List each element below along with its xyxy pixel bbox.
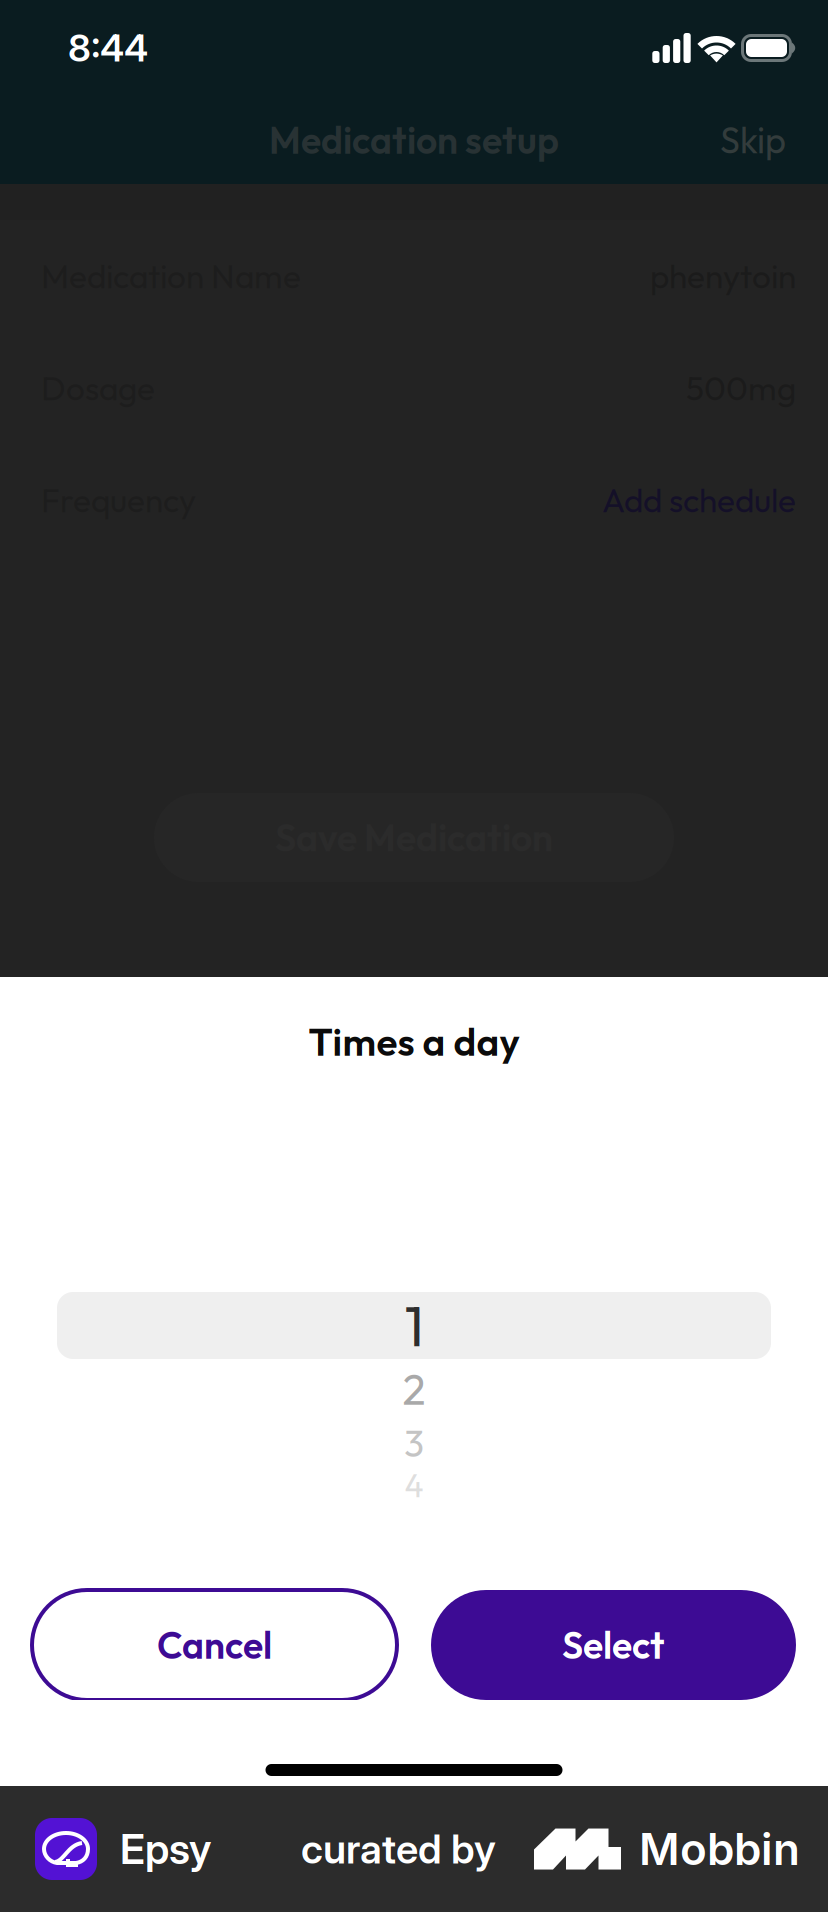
- button[interactable]: Cancel: [32, 1590, 397, 1700]
- staticText: 1: [404, 1290, 423, 1361]
- staticText: 2: [402, 1362, 425, 1416]
- staticText: Times a day: [308, 1017, 519, 1066]
- staticText: Epsy: [120, 1824, 211, 1874]
- staticText: 4: [404, 1465, 423, 1506]
- button[interactable]: Skip: [706, 105, 800, 175]
- staticText: Add schedule: [602, 479, 796, 521]
- staticText: Select: [562, 1621, 665, 1668]
- staticText: Cancel: [157, 1621, 272, 1668]
- staticText: Medication setup: [269, 116, 559, 163]
- staticText: Mobbin: [639, 1822, 800, 1876]
- staticText: 3: [404, 1419, 424, 1466]
- staticText: curated by: [301, 1825, 496, 1873]
- staticText: Skip: [720, 117, 786, 163]
- staticText: 8:44: [68, 25, 148, 71]
- button[interactable]: Select: [431, 1590, 796, 1700]
